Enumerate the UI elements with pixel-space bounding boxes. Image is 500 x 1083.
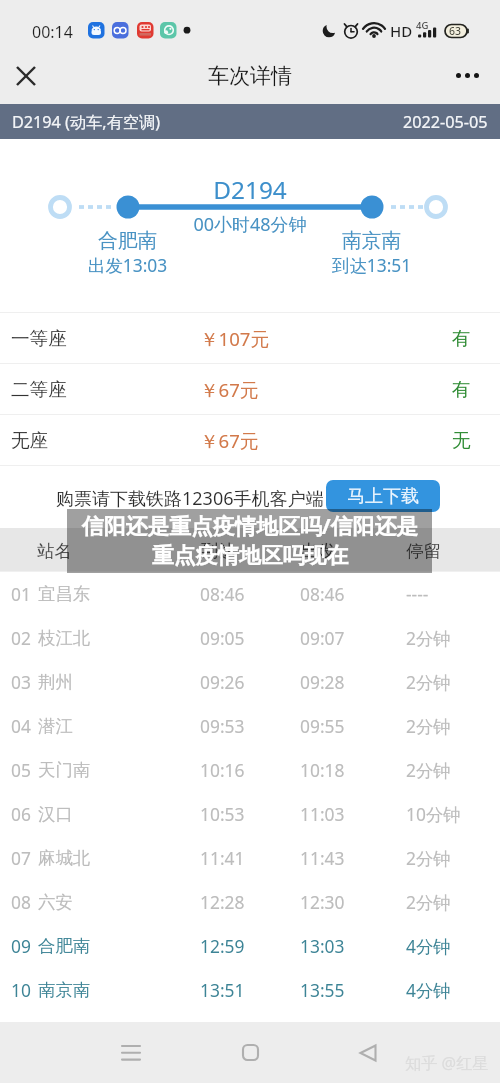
button[interactable]: 04 [0,704,500,748]
staticText: 00小时48分钟 [0,212,500,237]
button[interactable]: 06 [0,792,500,836]
staticText: 08 [11,890,31,914]
staticText: 南京南 [38,979,91,1001]
button[interactable]: Close [0,52,52,104]
staticText: 05 [11,758,31,782]
button[interactable]: More options [448,52,500,104]
staticText: 出发 [301,540,336,562]
staticText: 枝江北 [38,627,91,649]
button[interactable]: 08 [0,880,500,924]
button[interactable]: 09 [0,924,500,968]
button[interactable]: Back [347,1022,389,1083]
staticText: 合肥南 [38,935,91,957]
staticText: 4G [416,19,429,32]
staticText: 停留 [406,540,441,562]
staticText: 汉口 [38,803,73,825]
staticText: 无座 [11,429,49,452]
staticText: 10分钟 [406,802,461,826]
staticText: 4分钟 [406,934,451,958]
staticText: 13:51 [200,978,245,1002]
staticText: 01 [11,582,31,606]
staticText: 09 [11,934,31,958]
staticText: 车次详情 [208,63,292,89]
staticText: 有 [452,378,471,401]
staticText: 到达 [201,540,236,562]
staticText: ￥67元 [200,428,259,453]
staticText: 站名 [37,540,72,562]
staticText: 宜昌东 [38,583,91,605]
button[interactable]: 10 [0,968,500,1012]
staticText: 09:26 [200,670,245,694]
staticText: D2194 [0,173,500,206]
staticText: 知乎 @红星 [405,1052,489,1074]
staticText: 07 [11,846,31,870]
button[interactable]: 01 [0,572,500,616]
staticText: 马上下载 [347,485,419,508]
button[interactable]: 无座 [0,415,500,465]
staticText: 无 [452,429,471,452]
staticText: 02 [11,626,31,650]
staticText: 合肥南 [98,228,158,253]
staticText: 潜江 [38,715,73,737]
staticText: 信阳还是重点疫情地区吗/信阳还是 [82,511,418,541]
button[interactable]: 一等座 [0,313,500,363]
staticText: 天门南 [38,759,91,781]
staticText: 2分钟 [406,670,451,694]
staticText: 04 [11,714,31,738]
staticText: 12:59 [200,934,245,958]
staticText: 06 [11,802,31,826]
button[interactable]: Home [229,1022,271,1083]
staticText: 2分钟 [406,714,451,738]
staticText: 购票请下载铁路12306手机客户端 [56,486,324,511]
staticText: 一等座 [11,327,67,350]
staticText: 11:41 [200,846,245,870]
staticText: 4分钟 [406,978,451,1002]
staticText: 2分钟 [406,846,451,870]
staticText: 10 [11,978,31,1002]
staticText: 六安 [38,891,73,913]
button[interactable]: 03 [0,660,500,704]
staticText: 2分钟 [406,890,451,914]
staticText: ---- [406,582,429,606]
staticText: 2分钟 [406,626,451,650]
staticText: 二等座 [11,378,67,401]
staticText: D2194 (动车,有空调) [12,111,161,133]
staticText: 10:16 [200,758,245,782]
staticText: 03 [11,670,31,694]
staticText: 00:14 [32,21,73,43]
staticText: 11:03 [300,802,345,826]
staticText: 08:46 [200,582,245,606]
staticText: 有 [452,327,471,350]
staticText: 到达13:51 [332,253,412,277]
staticText: 09:05 [200,626,245,650]
staticText: 12:28 [200,890,245,914]
button[interactable]: 二等座 [0,364,500,414]
staticText: 09:07 [300,626,345,650]
staticText: 13:55 [300,978,345,1002]
button[interactable]: 马上下载 [326,480,440,512]
staticText: 2022-05-05 [403,111,488,133]
staticText: 出发13:03 [88,253,168,277]
staticText: ￥107元 [200,326,270,351]
staticText: 12:30 [300,890,345,914]
staticText: 重点疫情地区吗现在 [152,542,349,569]
staticText: 11:43 [300,846,345,870]
staticText: 09:53 [200,714,245,738]
button[interactable]: 02 [0,616,500,660]
staticText: 10:53 [200,802,245,826]
staticText: 南京南 [342,228,402,253]
button[interactable]: Recent apps [110,1022,152,1083]
staticText: 麻城北 [38,847,91,869]
staticText: 09:28 [300,670,345,694]
staticText: 2分钟 [406,758,451,782]
staticText: 63 [449,24,462,38]
staticText: HD [390,21,413,41]
staticText: 09:55 [300,714,345,738]
staticText: 13:03 [300,934,345,958]
staticText: 荆州 [38,671,73,693]
staticText: ￥67元 [200,377,259,402]
button[interactable]: 07 [0,836,500,880]
staticText: 10:18 [300,758,345,782]
staticText: 08:46 [300,582,345,606]
button[interactable]: 05 [0,748,500,792]
